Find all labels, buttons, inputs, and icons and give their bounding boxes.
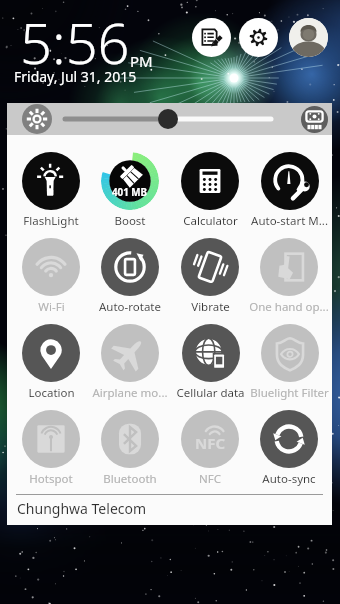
staticText: Airplane mo... <box>92 385 168 401</box>
button[interactable]: Location <box>11 324 91 404</box>
button[interactable]: Edit quick settings <box>192 18 231 57</box>
staticText: Vibrate <box>191 299 230 315</box>
staticText: One hand op... <box>249 299 329 315</box>
button[interactable]: Auto-sync <box>249 410 329 490</box>
button[interactable]: NFC <box>170 410 250 490</box>
staticText: 5:56 <box>20 4 130 80</box>
staticText: 401 MB <box>112 186 148 199</box>
staticText: Auto-start M... <box>251 213 328 229</box>
button[interactable]: Auto brightness <box>301 106 328 133</box>
button[interactable]: Hotspot <box>11 410 91 490</box>
button[interactable]: Bluetooth <box>90 410 170 490</box>
staticText: FlashLight <box>23 213 79 229</box>
staticText: Auto-sync <box>262 471 316 487</box>
staticText: Wi-Fi <box>38 299 65 315</box>
staticText: NFC <box>195 433 226 453</box>
button[interactable]: Settings <box>239 18 278 57</box>
staticText: Bluetooth <box>103 471 157 487</box>
button[interactable]: FlashLight <box>11 152 91 232</box>
staticText: Friday, Jul 31, 2015 <box>14 67 137 86</box>
button[interactable]: Airplane mo... <box>90 324 170 404</box>
staticText: Cellular data <box>176 385 245 401</box>
staticText: Chunghwa Telecom <box>17 499 147 518</box>
staticText: PM <box>130 51 153 71</box>
staticText: Boost <box>114 213 146 229</box>
button[interactable]: Auto-start M... <box>249 152 329 232</box>
staticText: NFC <box>199 471 221 487</box>
staticText: Hotspot <box>29 471 73 487</box>
staticText: Auto-rotate <box>99 299 161 315</box>
button[interactable]: One hand op... <box>249 238 329 318</box>
staticText: Calculator <box>183 213 238 229</box>
button[interactable]: Brightness <box>22 104 52 134</box>
staticText: Location <box>28 385 75 401</box>
button[interactable]: Cellular data <box>170 324 250 404</box>
button[interactable]: Calculator <box>170 152 250 232</box>
button[interactable]: User profile <box>289 18 328 57</box>
button[interactable]: Auto-rotate <box>90 238 170 318</box>
button[interactable]: 401 MB <box>90 152 170 232</box>
button[interactable]: Vibrate <box>170 238 250 318</box>
staticText: Bluelight Filter <box>250 385 329 401</box>
button[interactable]: Brightness slider <box>59 107 277 131</box>
button[interactable]: Wi-Fi <box>11 238 91 318</box>
button[interactable]: Bluelight Filter <box>249 324 329 404</box>
